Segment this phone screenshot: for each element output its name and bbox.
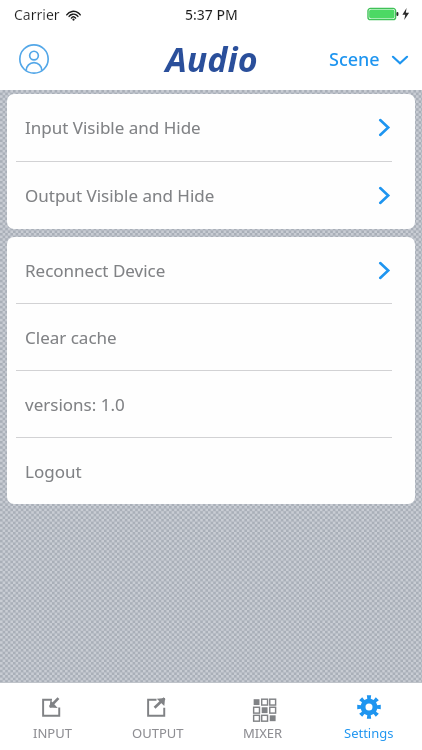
button[interactable]: Settings [316, 683, 422, 750]
button[interactable]: INPUT [0, 683, 105, 750]
staticText: versions: 1.0 [25, 393, 125, 416]
staticText: Carrier [14, 5, 60, 24]
staticText: INPUT [33, 724, 72, 742]
staticText: MIXER [243, 724, 283, 742]
button[interactable]: OUTPUT [105, 683, 210, 750]
staticText: Audio [165, 36, 258, 82]
staticText: Reconnect Device [25, 259, 166, 282]
button[interactable]: Profile [14, 39, 54, 79]
button[interactable]: Logout [7, 438, 415, 504]
staticText: Clear cache [25, 326, 117, 349]
button[interactable]: versions: 1.0 [7, 371, 415, 437]
staticText: Input Visible and Hide [25, 116, 201, 139]
button[interactable]: Output Visible and Hide [7, 162, 415, 229]
staticText: Settings [344, 724, 394, 742]
staticText: 5:37 PM [185, 5, 238, 24]
button[interactable]: Scene [325, 41, 412, 78]
staticText: OUTPUT [132, 724, 184, 742]
button[interactable]: Clear cache [7, 304, 415, 370]
staticText: Logout [25, 460, 82, 483]
staticText: Scene [329, 47, 380, 72]
button[interactable]: Input Visible and Hide [7, 94, 415, 161]
button[interactable]: MIXER [210, 683, 316, 750]
button[interactable]: Reconnect Device [7, 237, 415, 303]
staticText: Output Visible and Hide [25, 184, 215, 207]
